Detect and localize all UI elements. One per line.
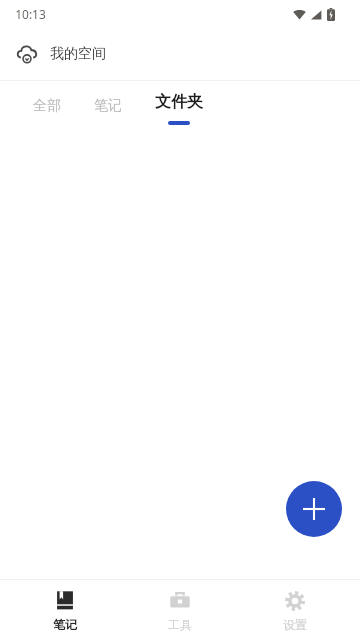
staticText: 10:13: [15, 6, 46, 22]
staticText: 设置: [283, 617, 307, 632]
button[interactable]: 全部: [18, 89, 76, 133]
button[interactable]: 我的空间: [0, 28, 360, 80]
staticText: 笔记: [94, 97, 122, 115]
button[interactable]: 笔记: [15, 580, 115, 642]
staticText: 笔记: [53, 617, 77, 632]
button[interactable]: 设置: [245, 580, 345, 642]
button[interactable]: 文件夹: [143, 85, 215, 137]
staticText: 我的空间: [50, 45, 106, 63]
button[interactable]: 笔记: [79, 89, 137, 133]
button[interactable]: 新建: [286, 481, 342, 537]
button[interactable]: 工具: [130, 580, 230, 642]
staticText: 工具: [168, 617, 192, 632]
staticText: 文件夹: [155, 92, 203, 112]
staticText: 全部: [33, 97, 61, 115]
